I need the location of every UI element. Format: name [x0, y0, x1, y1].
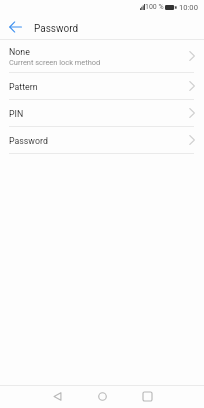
button[interactable]: Home	[89, 385, 116, 407]
button[interactable]: PIN	[0, 100, 204, 127]
staticText: Current screen lock method	[9, 58, 101, 67]
button[interactable]: None	[0, 40, 204, 73]
staticText: Password	[34, 23, 79, 35]
staticText: Pattern	[9, 82, 38, 92]
staticText: 100 %	[145, 3, 164, 11]
staticText: PIN	[9, 109, 24, 119]
staticText: None	[9, 47, 30, 57]
staticText: Password	[9, 136, 48, 146]
button[interactable]: Navigate up	[0, 14, 30, 39]
button[interactable]: Recent apps	[134, 385, 161, 407]
button[interactable]: Pattern	[0, 73, 204, 100]
button[interactable]: Back	[44, 385, 71, 407]
button[interactable]: Password	[0, 127, 204, 154]
staticText: 10:00	[179, 3, 198, 12]
